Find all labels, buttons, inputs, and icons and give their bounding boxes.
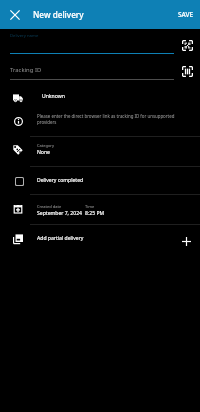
button[interactable]: Scan QR code [176,34,198,56]
button[interactable] [0,171,200,192]
staticText: None [37,149,50,156]
button[interactable]: Created date [37,204,82,217]
other: Category [7,139,29,161]
other: Provider [7,87,29,109]
staticText: September 7, 2024 [37,210,82,217]
staticText: Category [37,143,55,148]
staticText: SAVE [178,10,194,19]
button[interactable] [0,88,200,108]
staticText: Delivery completed [37,177,84,184]
staticText: Please enter the direct browser link as … [37,113,184,126]
staticText: New delivery [33,9,84,20]
button[interactable]: Scan barcode [176,60,198,82]
staticText: Created date [37,204,62,209]
staticText: Delivery name [10,33,39,39]
staticText: Add partial delivery [37,235,84,242]
button[interactable]: Close [4,4,25,25]
other: Created date [7,198,29,220]
staticText: Time [85,204,95,209]
button[interactable] [0,140,200,161]
other: Information [7,110,29,132]
other: Add partial delivery [7,228,29,250]
button[interactable]: SAVE [171,5,200,24]
button[interactable]: Time [85,204,105,217]
button[interactable]: Add [175,230,197,252]
button[interactable] [0,229,200,251]
staticText: Unknown [42,93,65,100]
staticText: Tracking ID [10,66,42,74]
staticText: 8:25 PM [85,210,105,217]
